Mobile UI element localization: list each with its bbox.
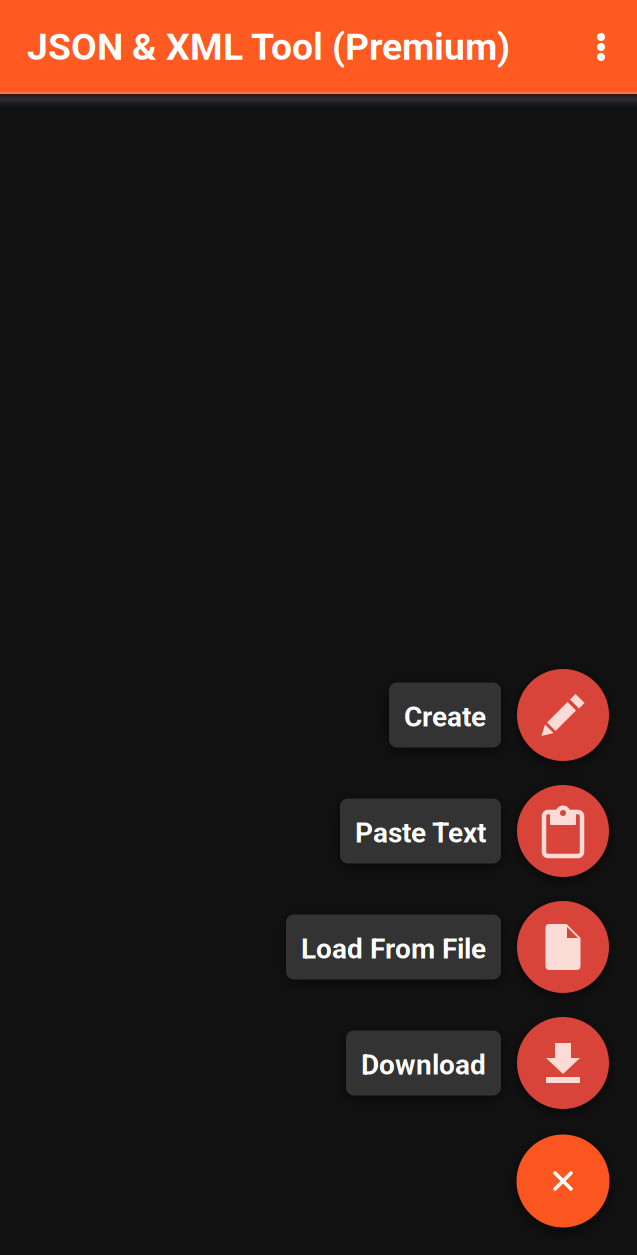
button[interactable]: Download: [517, 1017, 609, 1109]
button[interactable]: Download: [346, 1030, 501, 1095]
button[interactable]: Load From File: [286, 914, 501, 979]
button[interactable]: Load From File: [517, 901, 609, 993]
button[interactable]: More options: [573, 0, 629, 94]
button[interactable]: Create: [517, 669, 609, 761]
button[interactable]: Create: [389, 682, 501, 747]
button[interactable]: Close menu: [516, 1134, 609, 1227]
staticText: Download: [361, 1049, 486, 1081]
button[interactable]: Paste Text: [517, 785, 609, 877]
staticText: Create: [404, 701, 486, 733]
staticText: JSON & XML Tool (Premium): [27, 25, 510, 69]
staticText: Paste Text: [355, 817, 486, 849]
staticText: Load From File: [301, 933, 486, 965]
button[interactable]: Paste Text: [340, 798, 501, 863]
